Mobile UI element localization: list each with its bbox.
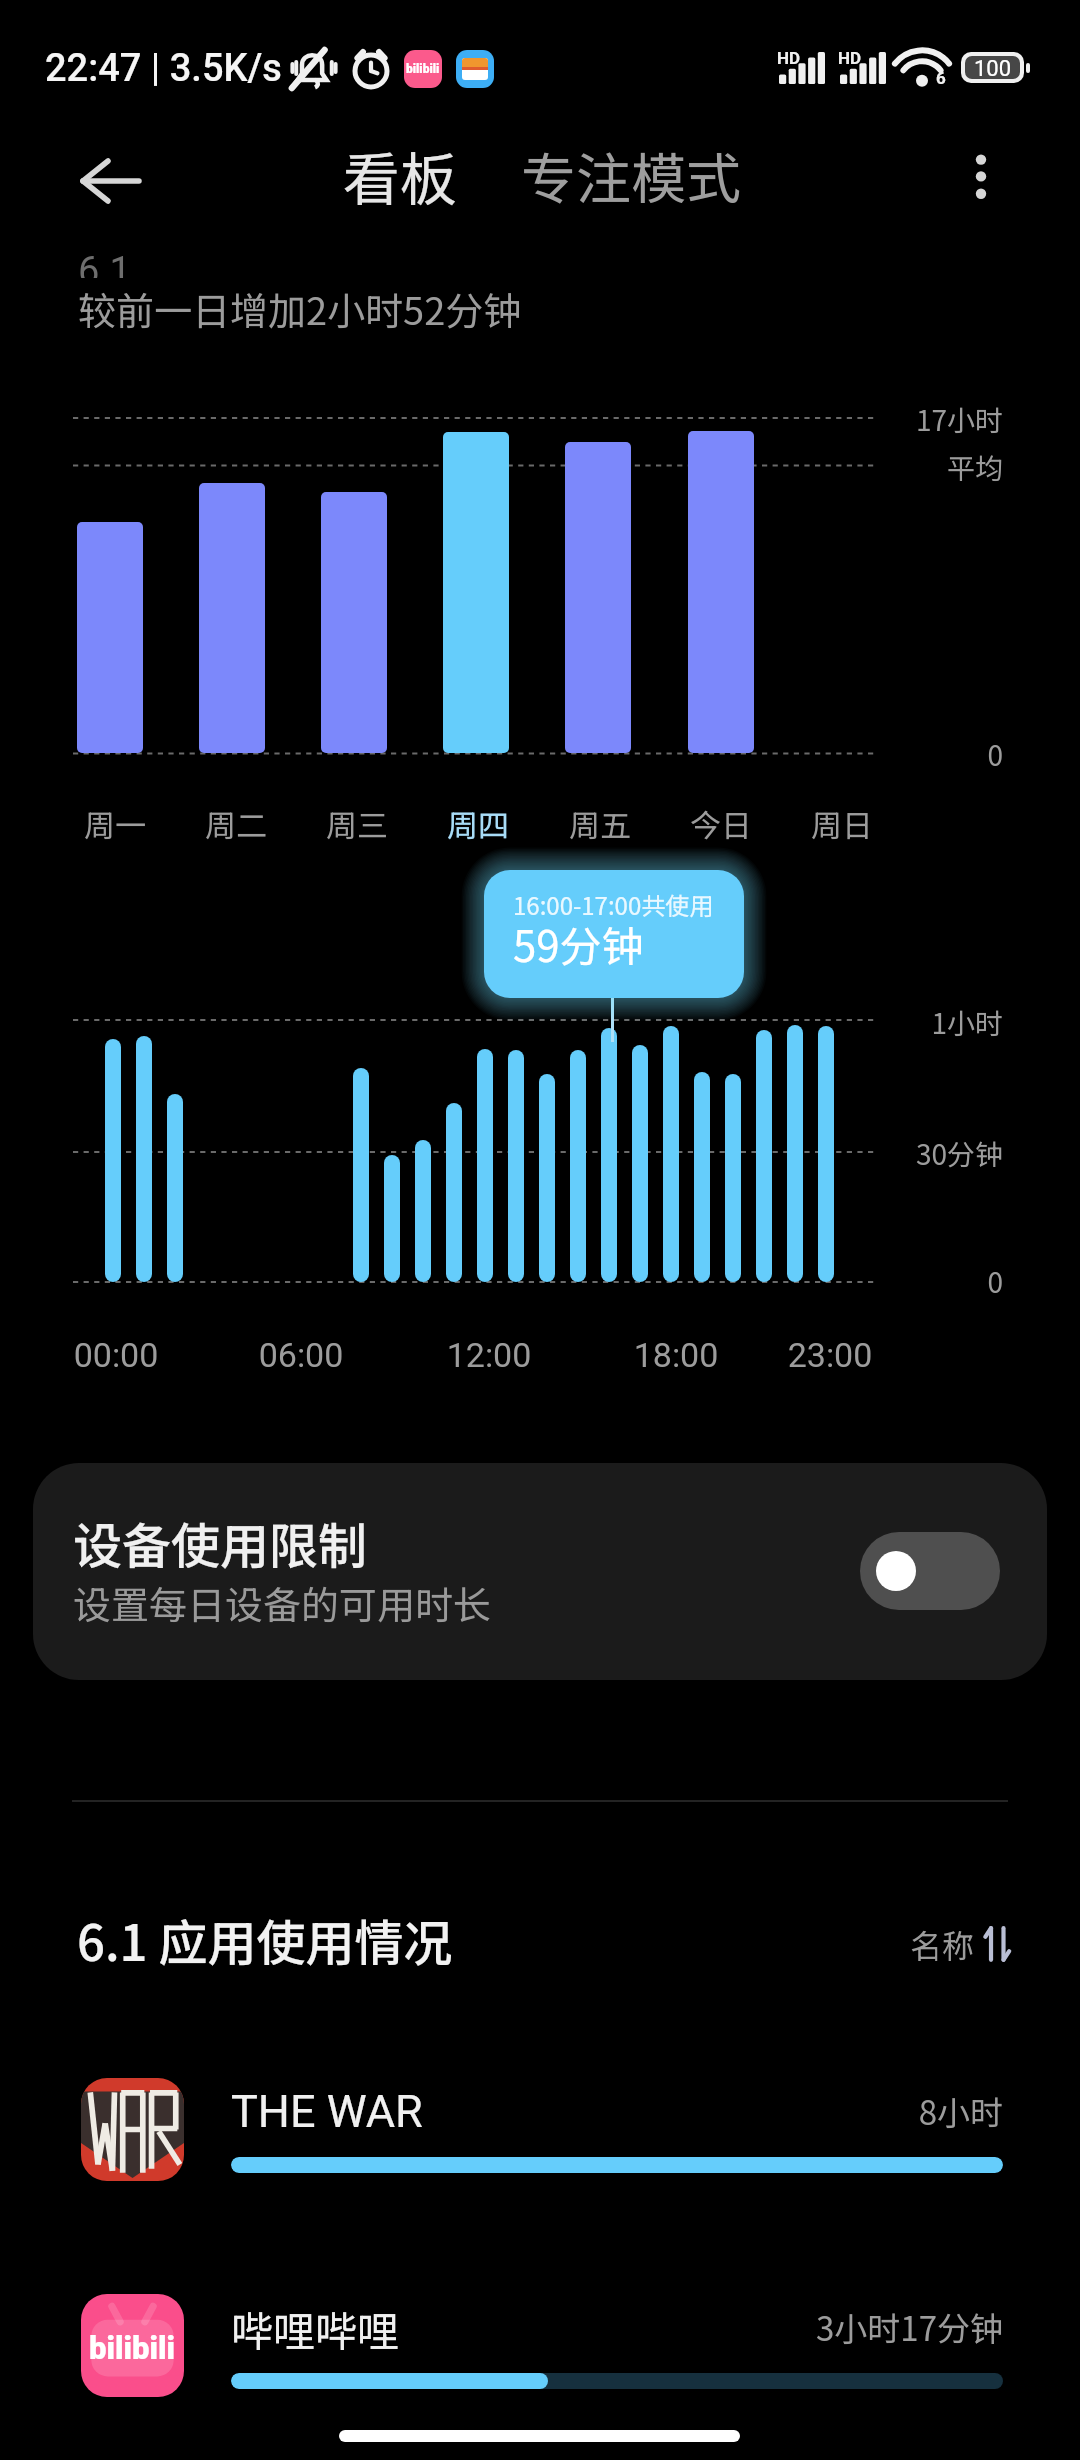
staticText: 专注模式: [521, 135, 742, 215]
staticText: 周四: [408, 801, 548, 846]
staticText: 00:00: [36, 1335, 196, 1375]
staticText: 看板: [343, 134, 457, 217]
staticText: 22:47 | 3.5K/s: [45, 46, 282, 91]
staticText: 3小时17分钟: [700, 2303, 1003, 2351]
staticText: HD: [777, 48, 801, 68]
staticText: 1小时: [835, 1002, 1003, 1043]
staticText: 8小时: [700, 2087, 1003, 2135]
button[interactable]: 看板: [343, 134, 457, 217]
staticText: 哔哩哔哩: [231, 2298, 400, 2359]
staticText: 30分钟: [835, 1133, 1003, 1174]
staticText: 名称: [910, 1921, 975, 1967]
staticText: 今日: [651, 801, 791, 846]
staticText: 设置每日设备的可用时长: [73, 1575, 492, 1630]
staticText: 周二: [166, 801, 306, 846]
staticText: 0: [835, 1261, 1003, 1302]
staticText: 59分钟: [513, 913, 644, 974]
button[interactable]: bilibili: [0, 2294, 1080, 2434]
button[interactable]: 设备使用限制: [33, 1463, 1047, 1680]
staticText: 23:00: [750, 1335, 910, 1375]
button[interactable]: More options: [946, 138, 1016, 208]
staticText: bilibili: [406, 62, 440, 76]
staticText: 6.1 应用使用情况: [77, 1904, 453, 1975]
button[interactable]: Device usage limit toggle: [860, 1532, 1000, 1610]
staticText: 周五: [530, 801, 670, 846]
staticText: 6.1: [78, 249, 131, 278]
staticText: 0: [835, 734, 1003, 775]
staticText: bilibili: [89, 2330, 176, 2366]
staticText: 06:00: [221, 1335, 381, 1375]
staticText: 16:00-17:00共使用: [513, 887, 714, 922]
staticText: 周日: [772, 801, 912, 846]
staticText: 周一: [45, 801, 185, 846]
button[interactable]: 专注模式: [521, 135, 742, 215]
staticText: 设备使用限制: [73, 1507, 368, 1578]
button[interactable]: Back: [57, 147, 143, 219]
staticText: 100: [974, 56, 1012, 79]
staticText: HD: [838, 48, 862, 68]
staticText: THE WAR: [231, 2085, 423, 2138]
button[interactable]: THE WAR: [0, 2078, 1080, 2218]
staticText: 12:00: [409, 1335, 569, 1375]
staticText: 周三: [287, 801, 427, 846]
staticText: 6: [936, 68, 946, 88]
staticText: 平均: [835, 447, 1003, 488]
staticText: 17小时: [835, 399, 1003, 440]
button[interactable]: 名称: [890, 1918, 1010, 1970]
staticText: 较前一日增加2小时52分钟: [78, 281, 522, 336]
staticText: 18:00: [596, 1335, 756, 1375]
